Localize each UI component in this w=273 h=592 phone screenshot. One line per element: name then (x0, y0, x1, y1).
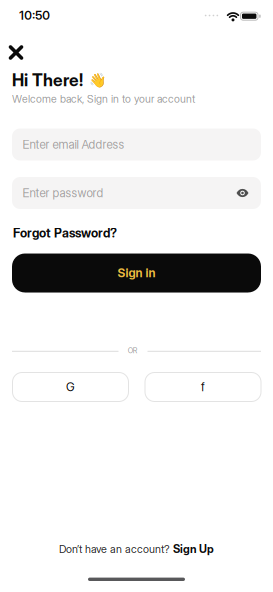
staticText: f (201, 380, 205, 394)
staticText: Enter password (22, 186, 103, 200)
staticText: Hi There! (12, 70, 83, 90)
staticText: Welcome back, Sign in to your account (12, 92, 195, 105)
button[interactable]: Sign in (12, 253, 261, 292)
button[interactable]: Show password (236, 188, 249, 197)
staticText: Forgot Password? (13, 225, 117, 240)
button[interactable]: Forgot Password? (13, 225, 117, 240)
staticText: OR (128, 346, 138, 355)
staticText: G (66, 380, 75, 394)
button[interactable]: Don’t have an account? (59, 542, 214, 556)
button[interactable]: Sign in with Facebook (144, 372, 261, 402)
staticText: 👋 (89, 72, 106, 88)
staticText: Don’t have an account? (59, 542, 170, 556)
staticText: Sign Up (173, 542, 214, 556)
button[interactable]: Enter password (12, 177, 261, 209)
button[interactable]: Sign in with Google (12, 372, 129, 402)
button[interactable]: Enter email Address (12, 128, 261, 160)
staticText: Enter email Address (22, 137, 124, 152)
staticText: Sign in (117, 266, 155, 280)
button[interactable]: Close (6, 42, 26, 62)
staticText: 10:50 (19, 8, 50, 23)
